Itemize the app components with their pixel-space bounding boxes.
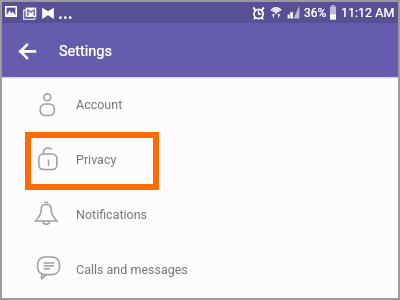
button[interactable]: Account: [2, 77, 398, 132]
staticText: Settings: [59, 43, 112, 60]
staticText: 11:12 AM: [341, 5, 395, 20]
staticText: 36%: [304, 6, 327, 20]
button[interactable]: Notifications: [2, 187, 398, 242]
staticText: Account: [76, 97, 123, 112]
staticText: Notifications: [76, 207, 148, 222]
staticText: Calls and messages: [76, 262, 188, 277]
button[interactable]: Privacy: [2, 132, 398, 187]
staticText: Privacy: [76, 152, 117, 167]
button[interactable]: Back: [10, 30, 50, 70]
button[interactable]: Calls and messages: [2, 242, 398, 297]
